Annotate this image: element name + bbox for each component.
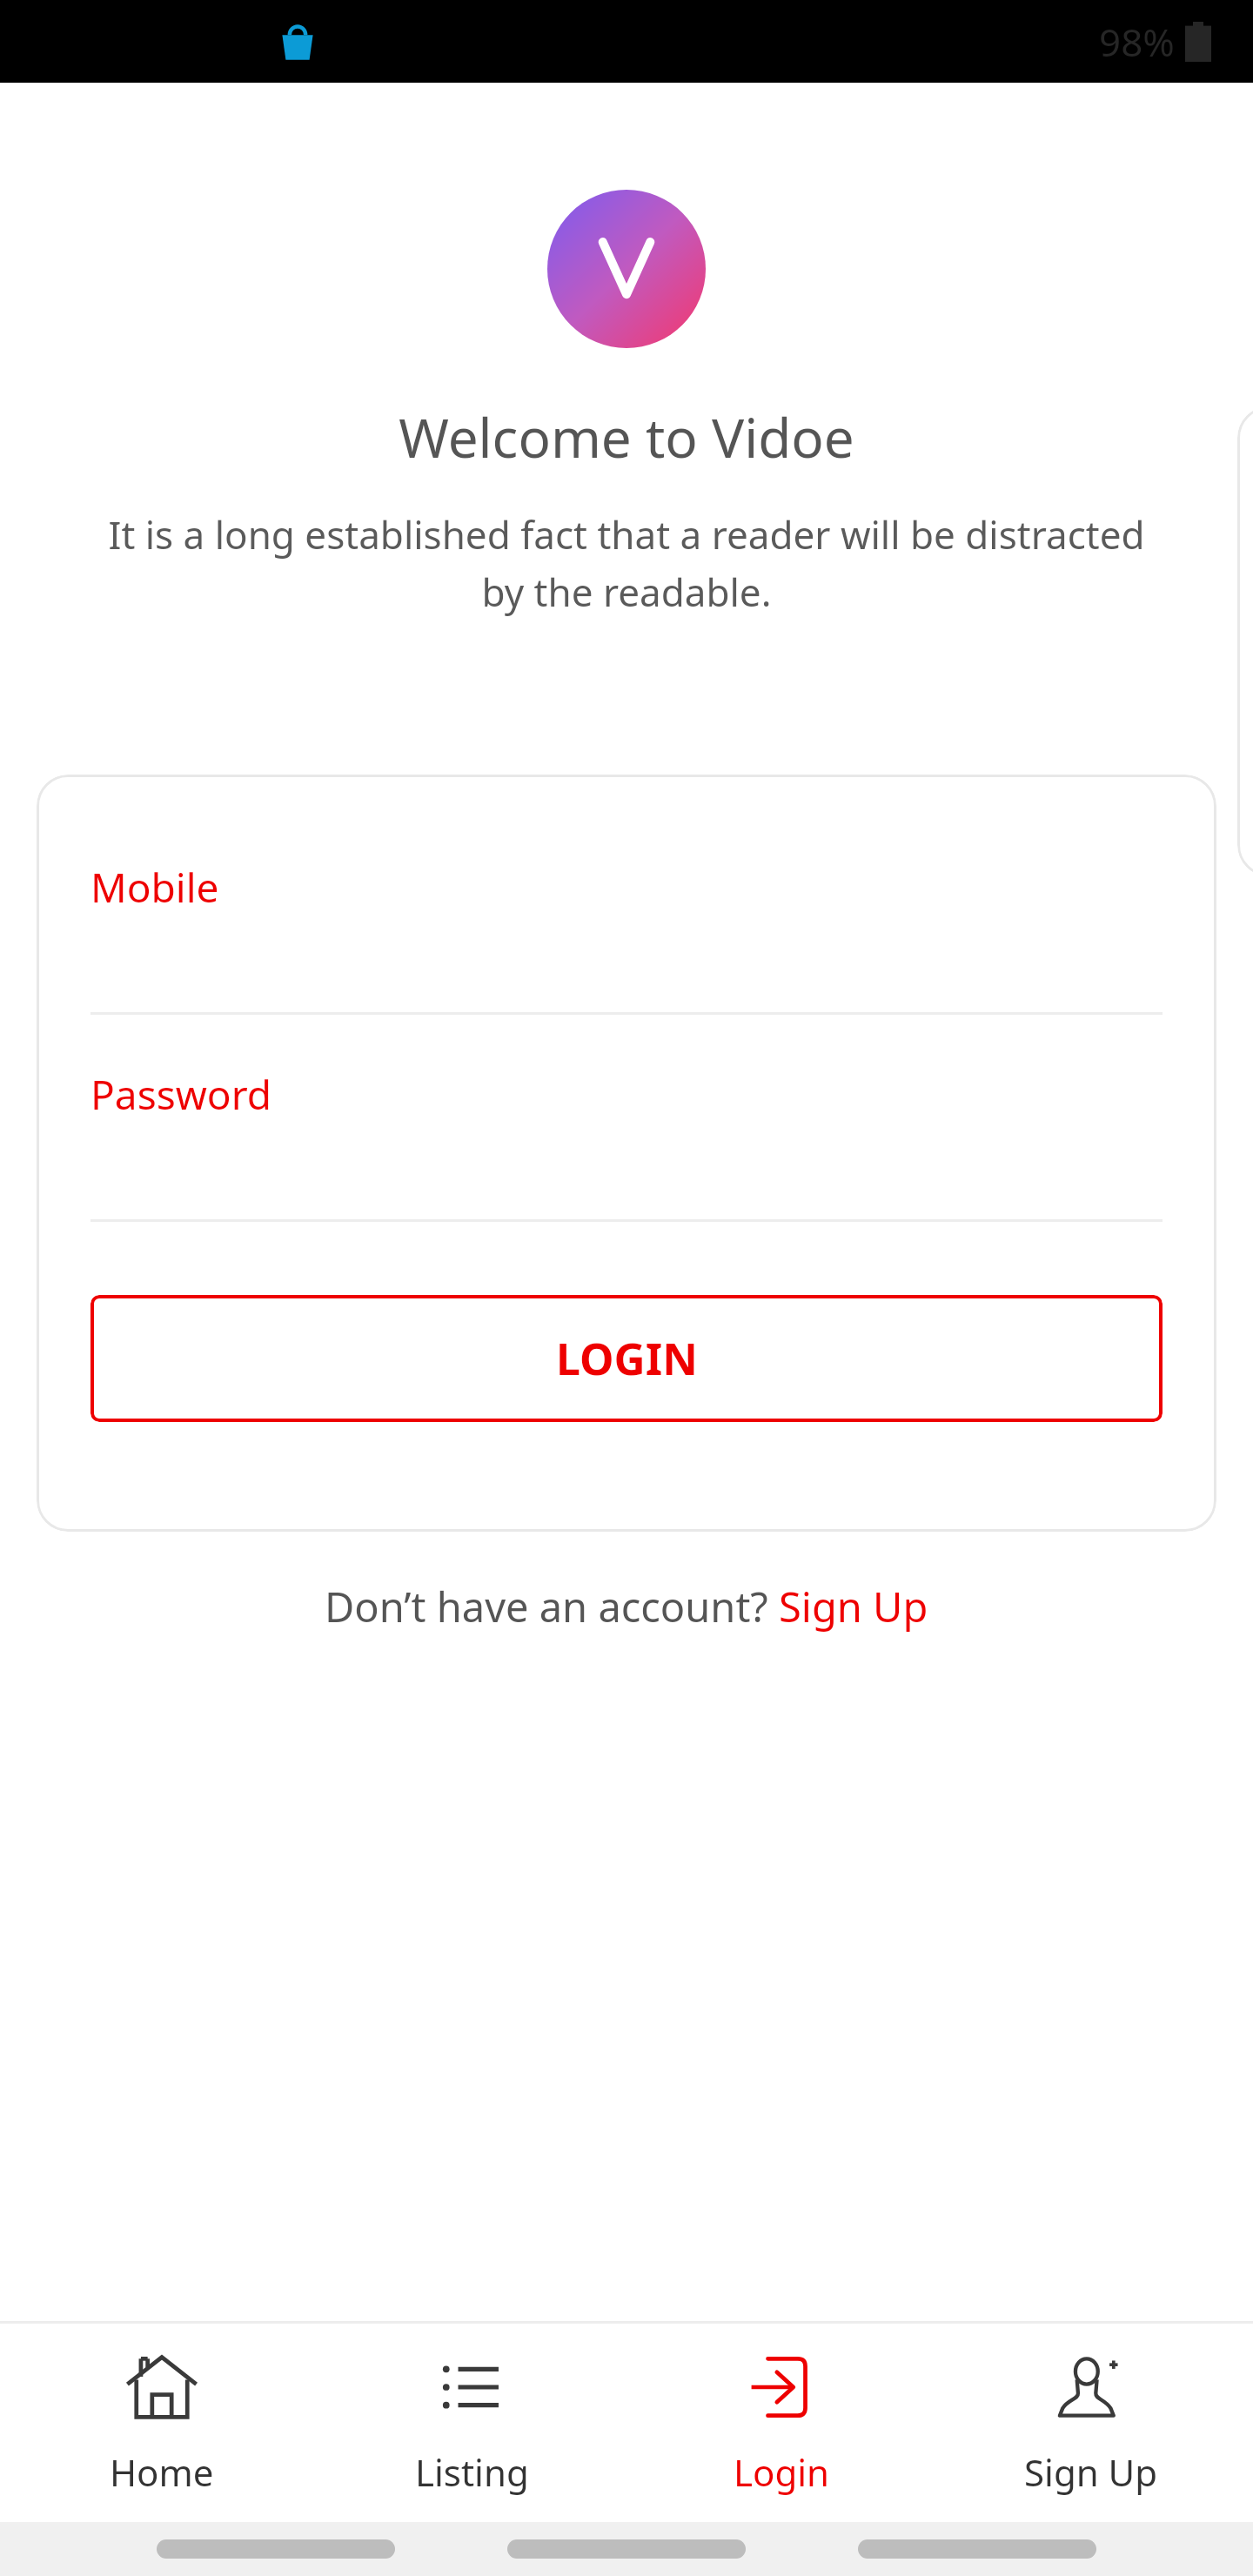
staticText: Welcome to Vidoe: [399, 400, 854, 473]
staticText: It is a long established fact that a rea…: [96, 508, 1157, 618]
button[interactable]: Login: [633, 2324, 929, 2522]
staticText: Listing: [415, 2447, 529, 2497]
staticText: Login: [734, 2447, 830, 2497]
button[interactable]: Mobile: [90, 860, 1163, 915]
button[interactable]: Don’t have an account? Sign Up: [318, 1573, 935, 1640]
button[interactable]: Navigation: [858, 2539, 1096, 2559]
button[interactable]: LOGIN: [90, 1295, 1163, 1422]
staticText: Sign Up: [1024, 2447, 1158, 2497]
staticText: Mobile: [90, 860, 219, 915]
staticText: Don’t have an account? Sign Up: [325, 1579, 928, 1634]
staticText: Home: [110, 2447, 214, 2497]
button[interactable]: Password: [90, 1067, 1163, 1122]
button[interactable]: Listing: [324, 2324, 620, 2522]
staticText: LOGIN: [556, 1329, 698, 1388]
button[interactable]: Navigation: [157, 2539, 395, 2559]
button[interactable]: Sign Up: [943, 2324, 1239, 2522]
staticText: 98%: [1099, 16, 1175, 68]
button[interactable]: Navigation: [507, 2539, 746, 2559]
button[interactable]: Home: [14, 2324, 310, 2522]
staticText: Password: [90, 1067, 272, 1122]
